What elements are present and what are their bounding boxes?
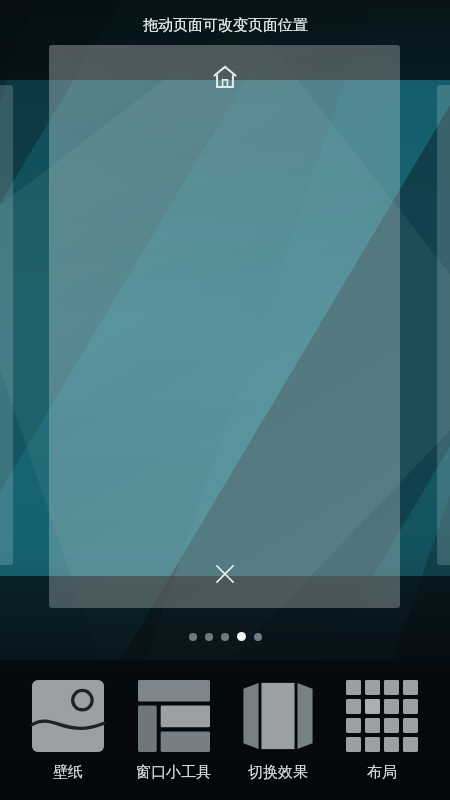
button[interactable] xyxy=(189,633,197,641)
button[interactable]: Set as home screen xyxy=(208,60,242,94)
staticText: 窗口小工具 xyxy=(136,763,211,782)
button[interactable]: 壁纸 xyxy=(32,674,104,788)
button[interactable] xyxy=(237,632,246,641)
staticText: 布局 xyxy=(367,763,397,782)
button[interactable]: 窗口小工具 xyxy=(136,674,211,788)
button[interactable] xyxy=(221,633,229,641)
staticText: 切换效果 xyxy=(248,763,308,782)
button[interactable]: 布局 xyxy=(346,674,418,788)
button[interactable]: Remove page xyxy=(205,554,245,594)
staticText: 壁纸 xyxy=(53,763,83,782)
button[interactable] xyxy=(437,85,450,565)
button[interactable] xyxy=(205,633,213,641)
button[interactable] xyxy=(0,85,13,565)
button[interactable]: Set as home screen xyxy=(49,45,400,608)
button[interactable]: 切换效果 xyxy=(242,674,314,788)
button[interactable] xyxy=(254,633,262,641)
staticText: 拖动页面可改变页面位置 xyxy=(143,16,308,35)
